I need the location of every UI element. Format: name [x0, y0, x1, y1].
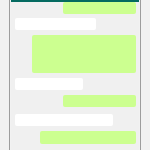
- button[interactable]: Sent message: [40, 131, 136, 144]
- button[interactable]: Sent message: [63, 95, 136, 107]
- button[interactable]: Sent message: [63, 2, 136, 14]
